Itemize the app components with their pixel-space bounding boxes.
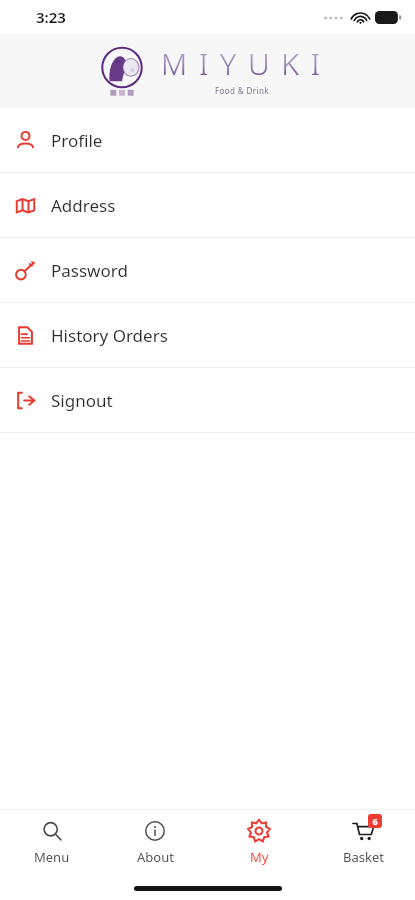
staticText: Address [51, 194, 116, 217]
staticText: 6 [372, 815, 378, 827]
button[interactable]: My [207, 810, 311, 872]
staticText: Password [51, 259, 128, 282]
staticText: 3:23 [36, 7, 66, 27]
staticText: M I Y U K I [161, 43, 323, 84]
button[interactable]: Menu [0, 810, 103, 872]
staticText: Basket [343, 848, 384, 866]
other: About [144, 820, 166, 842]
other: Menu [41, 820, 63, 842]
button[interactable]: About [103, 810, 207, 872]
button[interactable]: Password [0, 238, 415, 302]
other: Basket [352, 820, 374, 842]
button[interactable]: Profile [0, 108, 415, 172]
staticText: Food & Drink [215, 85, 269, 96]
staticText: Menu [34, 848, 70, 866]
staticText: Profile [51, 129, 103, 152]
button[interactable]: History Orders [0, 303, 415, 367]
staticText: My [250, 848, 269, 866]
staticText: History Orders [51, 324, 168, 347]
staticText: Signout [51, 389, 113, 412]
button[interactable]: Signout [0, 368, 415, 432]
button[interactable]: Basket [311, 810, 415, 872]
staticText: About [137, 848, 174, 866]
other: My [247, 819, 271, 843]
button[interactable]: Address [0, 173, 415, 237]
